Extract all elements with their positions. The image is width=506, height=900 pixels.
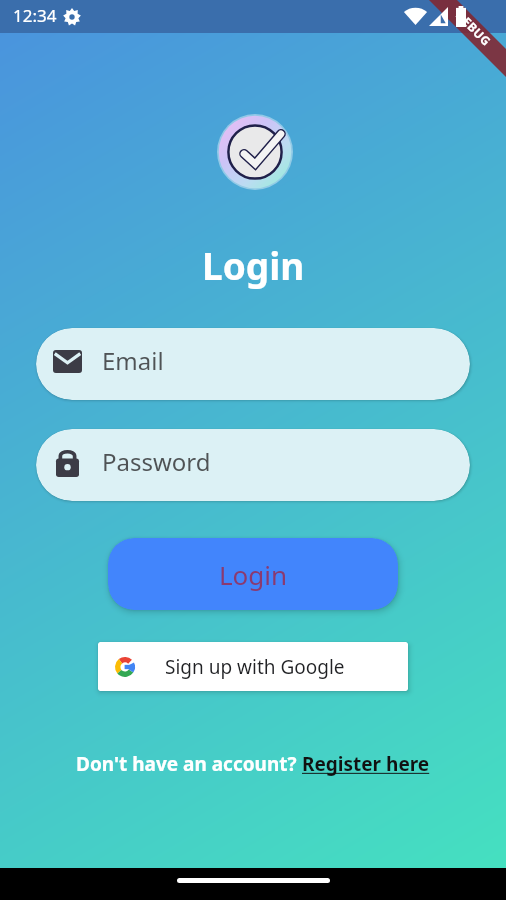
button[interactable]: Email <box>36 328 470 400</box>
staticText: Sign up with Google <box>165 654 345 680</box>
staticText: Login <box>219 557 288 592</box>
button[interactable]: Sign up with Google <box>98 642 408 691</box>
staticText: Don't have an account? <box>76 751 302 777</box>
staticText: Password <box>102 445 211 478</box>
button[interactable]: Settings <box>63 8 81 26</box>
button[interactable]: Register here <box>302 751 430 777</box>
staticText: Register here <box>302 751 430 777</box>
staticText: 12:34 <box>13 4 57 27</box>
staticText: Login <box>202 240 305 290</box>
staticText: Email <box>102 344 164 377</box>
staticText: DEBUG <box>453 7 495 49</box>
button[interactable]: Password <box>36 429 470 501</box>
button[interactable]: Login <box>108 538 398 610</box>
